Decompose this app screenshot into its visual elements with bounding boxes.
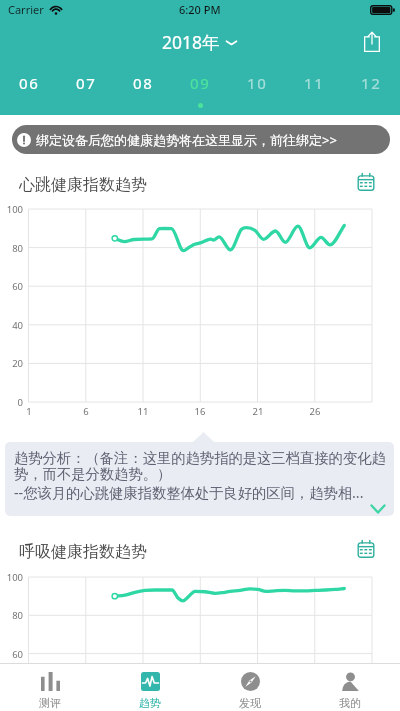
staticText: 呼吸健康指数趋势 <box>19 542 147 562</box>
staticText: 21 <box>248 405 268 418</box>
staticText: 60 <box>0 648 23 661</box>
staticText: 2018年 <box>162 30 220 54</box>
staticText: 趋势分析：（备注：这里的趋势指的是这三档直接的变化趋势，而不是分数趋势。） <box>14 449 391 483</box>
staticText: 40 <box>0 319 23 332</box>
button[interactable]: 07 <box>58 73 115 114</box>
staticText: 11 <box>133 405 153 418</box>
button[interactable]: 测评 <box>0 664 100 710</box>
staticText: 1 <box>19 405 39 418</box>
button[interactable]: 趋势分析：（备注：这里的趋势指的是这三档直接的变化趋势，而不是分数趋势。） <box>5 442 394 516</box>
staticText: Carrier <box>8 2 44 17</box>
staticText: 20 <box>0 357 23 370</box>
staticText: 测评 <box>39 696 61 710</box>
staticText: 100 <box>0 571 23 584</box>
staticText: 6 <box>76 405 96 418</box>
button[interactable]: 08 <box>115 73 172 114</box>
staticText: 11 <box>304 73 325 93</box>
staticText: 06 <box>19 73 40 93</box>
button[interactable]: 分享 <box>356 26 388 58</box>
staticText: 26 <box>305 405 325 418</box>
button[interactable]: 12 <box>343 73 400 114</box>
staticText: 12 <box>361 73 382 93</box>
button[interactable]: 趋势 <box>100 664 200 710</box>
staticText: 绑定设备后您的健康趋势将在这里显示，前往绑定>> <box>36 131 337 149</box>
staticText: 10 <box>247 73 268 93</box>
staticText: 09 <box>190 73 211 93</box>
staticText: 心跳健康指数趋势 <box>19 175 147 195</box>
staticText: 80 <box>0 242 23 255</box>
staticText: 我的 <box>339 696 361 710</box>
staticText: 趋势 <box>139 696 161 710</box>
button[interactable]: 选择日期 <box>354 537 378 561</box>
staticText: 60 <box>0 280 23 293</box>
button[interactable]: 2018年 <box>162 30 238 54</box>
button[interactable]: 09 <box>172 73 229 114</box>
staticText: 80 <box>0 609 23 622</box>
button[interactable]: 11 <box>286 73 343 114</box>
button[interactable]: 06 <box>0 73 58 114</box>
staticText: 16 <box>190 405 210 418</box>
button[interactable]: 发现 <box>200 664 300 710</box>
staticText: 07 <box>76 73 97 93</box>
staticText: --您该月的心跳健康指数整体处于良好的区间，趋势相... <box>14 483 391 503</box>
button[interactable]: 绑定设备后您的健康趋势将在这里显示，前往绑定>> <box>12 125 390 154</box>
button[interactable]: 选择日期 <box>354 170 378 194</box>
button[interactable]: 10 <box>229 73 286 114</box>
button[interactable]: 我的 <box>300 664 400 710</box>
staticText: 0 <box>0 396 23 409</box>
staticText: 发现 <box>239 696 261 710</box>
staticText: 100 <box>0 203 23 216</box>
staticText: 6:20 PM <box>179 2 221 17</box>
staticText: 08 <box>133 73 154 93</box>
